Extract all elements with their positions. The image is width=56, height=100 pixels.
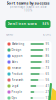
staticText: Sort teams by success xyxy=(6,0,49,6)
staticText: 65 xyxy=(45,72,49,76)
staticText: Sales xyxy=(11,60,17,64)
staticText: People xyxy=(11,90,22,94)
button[interactable]: Ops xyxy=(4,95,51,100)
staticText: Support xyxy=(11,54,22,58)
button[interactable]: Sales xyxy=(4,59,51,65)
button[interactable]: Overall team success xyxy=(5,20,50,28)
button[interactable]: Research xyxy=(4,77,51,83)
staticText: Product xyxy=(11,72,22,76)
button[interactable]: Legal xyxy=(4,83,51,89)
staticText: Ops xyxy=(11,96,16,100)
staticText: 73 xyxy=(45,66,49,70)
staticText: 80 xyxy=(45,60,49,64)
staticText: percentage based on a bar xyxy=(9,5,46,9)
button[interactable]: Support xyxy=(4,53,51,59)
staticText: 41 xyxy=(45,84,49,88)
button[interactable]: Finance xyxy=(4,65,51,71)
staticText: Legal xyxy=(11,84,18,88)
staticText: 91 xyxy=(45,48,49,52)
staticText: TEAMS xyxy=(5,33,12,36)
staticText: 95 xyxy=(45,42,49,46)
staticText: SCORE xyxy=(42,33,50,36)
staticText: Finance xyxy=(11,66,21,70)
button[interactable]: Product xyxy=(4,71,51,77)
staticText: 86 xyxy=(45,54,49,58)
staticText: 27 xyxy=(45,90,49,94)
staticText: Research xyxy=(11,78,23,82)
button[interactable]: People xyxy=(4,89,51,95)
button[interactable]: Marketing xyxy=(4,41,51,47)
staticText: Marketing xyxy=(11,42,24,46)
staticText: Design xyxy=(11,48,21,52)
staticText: 84% xyxy=(42,22,48,26)
button[interactable]: Design xyxy=(4,47,51,53)
staticText: 100% xyxy=(24,9,32,12)
staticText: Overall team success xyxy=(7,22,36,26)
staticText: 56 xyxy=(45,78,49,82)
staticText: 17 xyxy=(45,96,49,100)
